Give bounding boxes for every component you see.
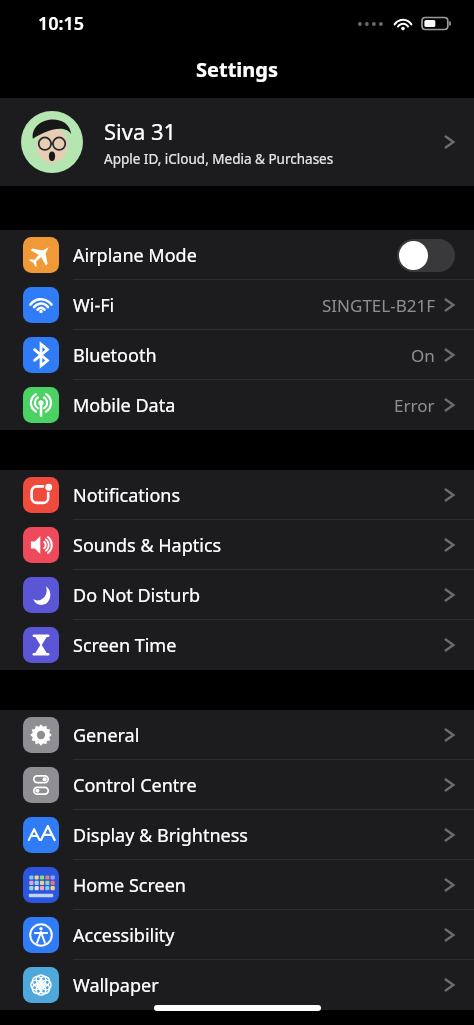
button[interactable]: Sounds & Haptics [0, 520, 474, 570]
button[interactable]: Airplane Mode [0, 230, 474, 280]
staticText: Airplane Mode [73, 243, 197, 268]
button[interactable]: Control Centre [0, 760, 474, 810]
button[interactable]: Display & Brightness [0, 810, 474, 860]
button[interactable]: Screen Time [0, 620, 474, 670]
button[interactable]: Do Not Disturb [0, 570, 474, 620]
staticText: SINGTEL-B21F [322, 294, 435, 317]
staticText: Mobile Data [73, 393, 176, 418]
staticText: Bluetooth [73, 343, 157, 368]
staticText: Settings [196, 56, 278, 83]
button[interactable]: Home Screen [0, 860, 474, 910]
button[interactable]: Wi-Fi [0, 280, 474, 330]
button[interactable]: Wallpaper [0, 960, 474, 1010]
button[interactable]: General [0, 710, 474, 760]
staticText: Sounds & Haptics [73, 533, 222, 558]
staticText: General [73, 723, 140, 748]
staticText: On [411, 344, 435, 367]
button[interactable]: Mobile Data [0, 380, 474, 430]
staticText: Do Not Disturb [73, 583, 200, 608]
staticText: 10:15 [38, 11, 85, 36]
button[interactable]: Accessibility [0, 910, 474, 960]
button[interactable]: Bluetooth [0, 330, 474, 380]
staticText: Wi-Fi [73, 293, 115, 318]
button[interactable]: Siva 31 [0, 98, 474, 186]
staticText: Apple ID, iCloud, Media & Purchases [104, 150, 334, 168]
staticText: Notifications [73, 483, 181, 508]
button[interactable]: Airplane Mode toggle [397, 239, 455, 272]
staticText: Screen Time [73, 633, 177, 658]
staticText: Error [394, 394, 435, 417]
button[interactable]: Notifications [0, 470, 474, 520]
staticText: Siva 31 [104, 116, 177, 146]
staticText: Home Screen [73, 873, 186, 898]
staticText: Accessibility [73, 923, 175, 948]
staticText: Control Centre [73, 773, 197, 798]
staticText: Wallpaper [73, 973, 159, 998]
staticText: Display & Brightness [73, 823, 248, 848]
